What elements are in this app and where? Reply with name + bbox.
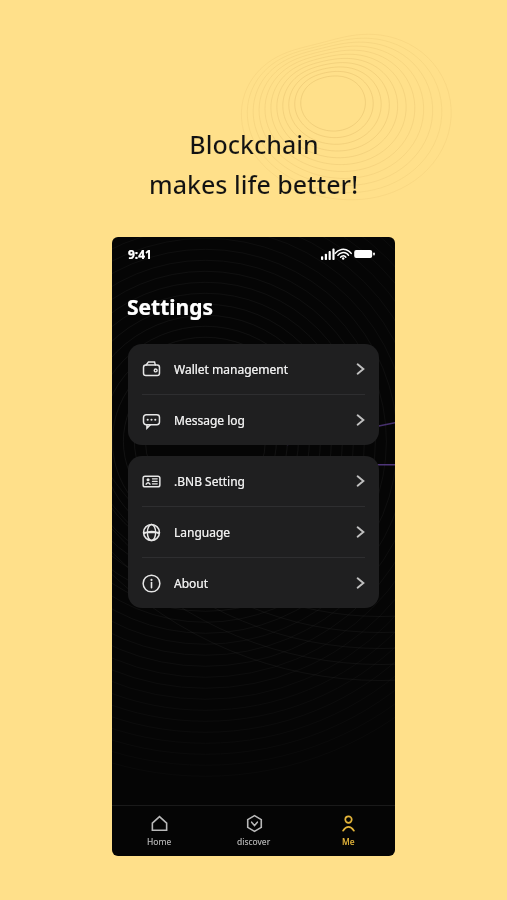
staticText: .BNB Setting <box>174 473 245 489</box>
staticText: Message log <box>174 412 245 428</box>
staticText: About <box>174 575 209 591</box>
staticText: Settings <box>127 293 214 322</box>
staticText: 9:41 <box>128 246 152 262</box>
staticText: makes life better! <box>149 167 358 201</box>
button[interactable]: Message log <box>128 395 379 445</box>
button[interactable]: .BNB Setting <box>128 456 379 506</box>
staticText: discover <box>237 836 271 848</box>
button[interactable]: Home <box>112 806 207 856</box>
staticText: Language <box>174 524 231 540</box>
staticText: Wallet management <box>174 361 289 377</box>
button[interactable]: About <box>128 558 379 608</box>
staticText: Blockchain <box>189 127 319 161</box>
button[interactable]: Me <box>301 806 395 856</box>
staticText: Me <box>342 836 355 848</box>
button[interactable]: Language <box>128 507 379 557</box>
button[interactable]: discover <box>207 806 301 856</box>
button[interactable]: Wallet management <box>128 344 379 394</box>
staticText: Home <box>147 836 172 848</box>
